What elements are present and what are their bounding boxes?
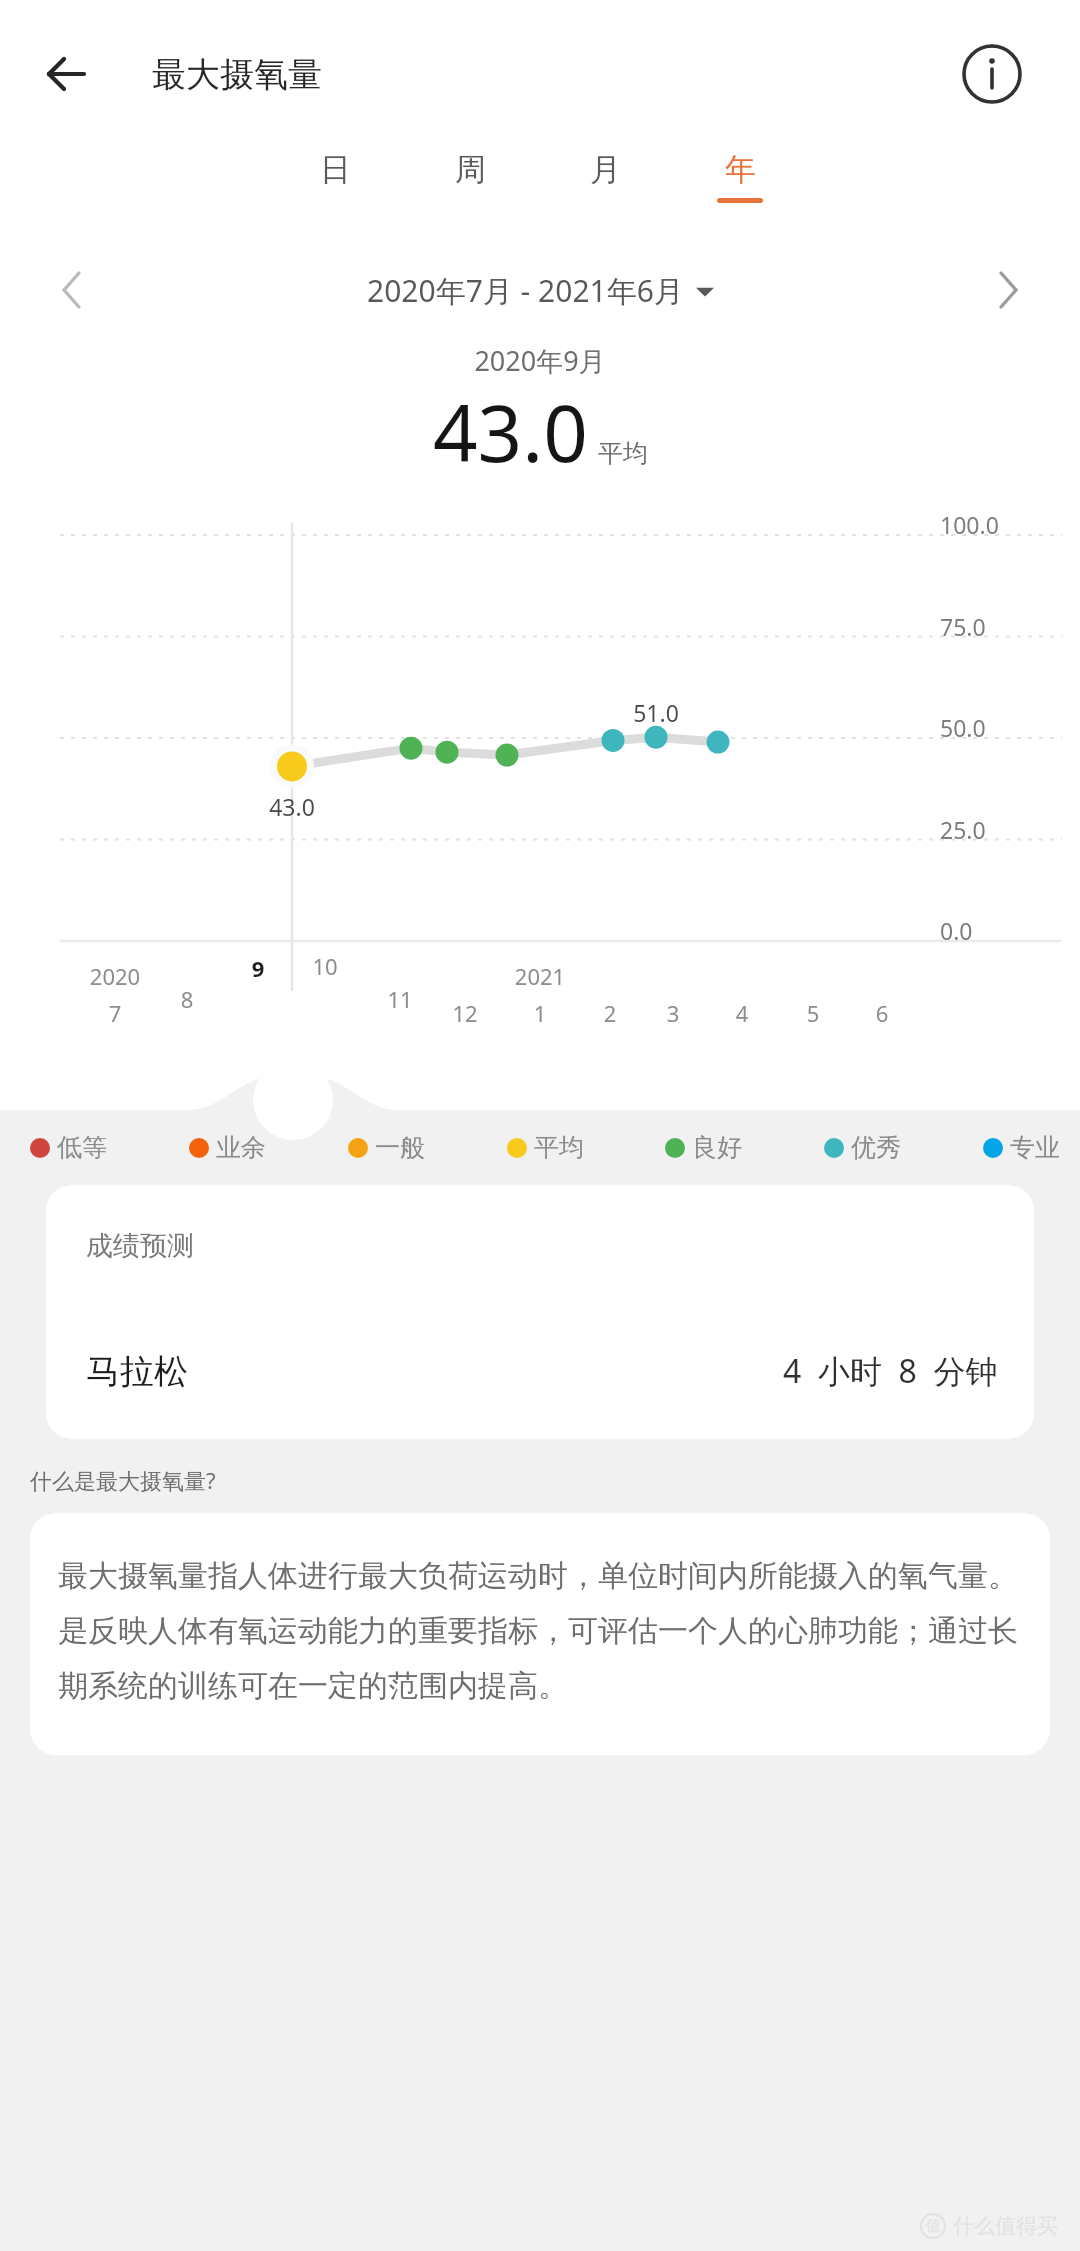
staticText: 2	[570, 998, 650, 1028]
staticText: 业余	[216, 1132, 266, 1163]
staticText: 8	[147, 984, 227, 1014]
staticText: 日	[320, 150, 351, 189]
staticText: 2020	[75, 961, 155, 991]
button[interactable]: Next	[980, 262, 1036, 318]
button[interactable]: 年	[694, 150, 786, 230]
staticText: 周	[455, 150, 486, 189]
staticText: 值	[926, 2217, 941, 2236]
button[interactable]: 成绩预测	[46, 1185, 1034, 1439]
staticText: 100.0	[940, 509, 1040, 540]
staticText: 最大摄氧量	[152, 53, 322, 96]
staticText: 43.0	[433, 379, 588, 485]
staticText: 10	[285, 951, 365, 981]
staticText: 一般	[375, 1132, 425, 1163]
button[interactable]: 2020年7月 - 2021年6月	[367, 270, 714, 311]
button[interactable]: Previous	[44, 262, 100, 318]
staticText: 75.0	[940, 611, 1040, 642]
staticText: 什么是最大摄氧量?	[30, 1465, 216, 1495]
staticText: 4	[702, 998, 782, 1028]
button[interactable]: 周	[424, 150, 516, 230]
staticText: 月	[590, 150, 621, 189]
staticText: 25.0	[940, 814, 1040, 845]
staticText: 2020年7月 - 2021年6月	[367, 270, 684, 311]
staticText: 平均	[534, 1132, 584, 1163]
button[interactable]: 日	[289, 150, 381, 230]
staticText: 51.0	[616, 697, 696, 728]
button[interactable]: Back	[38, 46, 94, 102]
staticText: 3	[633, 998, 713, 1028]
button[interactable]: Info	[960, 42, 1024, 106]
staticText: 平均	[598, 438, 648, 469]
staticText: 成绩预测	[86, 1229, 194, 1263]
staticText: 12	[425, 998, 505, 1028]
staticText: 2021	[500, 961, 580, 991]
staticText: 最大摄氧量指人体进行最大负荷运动时，单位时间内所能摄入的氧气量。是反映人体有氧运…	[58, 1557, 1024, 1705]
staticText: 低等	[57, 1132, 107, 1163]
staticText: 年	[725, 150, 756, 189]
staticText: 4 小时 8 分钟	[783, 1349, 998, 1393]
staticText: 6	[842, 998, 922, 1028]
staticText: 2020年9月	[0, 342, 1080, 379]
button[interactable]: 月	[559, 150, 651, 230]
staticText: 0.0	[940, 915, 1040, 946]
staticText: 马拉松	[86, 1350, 188, 1393]
staticText: 什么值得买	[953, 2213, 1058, 2239]
staticText: 7	[75, 998, 155, 1028]
staticText: 良好	[692, 1132, 742, 1163]
staticText: 43.0	[252, 791, 332, 822]
staticText: 优秀	[851, 1132, 901, 1163]
staticText: 专业	[1010, 1132, 1060, 1163]
staticText: 9	[218, 953, 298, 983]
staticText: 5	[773, 998, 853, 1028]
staticText: 50.0	[940, 712, 1040, 743]
staticText: 11	[360, 984, 440, 1014]
staticText: 1	[500, 998, 580, 1028]
